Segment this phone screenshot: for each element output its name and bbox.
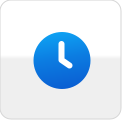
- button[interactable]: Clock: [0, 0, 121, 119]
